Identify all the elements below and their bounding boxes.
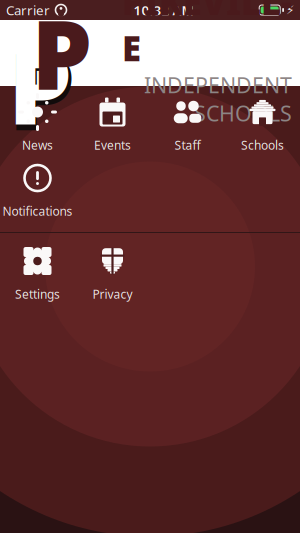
button[interactable]: Notifications [0, 158, 75, 222]
staticText: Carrier [6, 1, 50, 19]
button[interactable]: Privacy [75, 241, 150, 305]
staticText: News [22, 137, 53, 153]
staticText: Privacy [92, 286, 132, 302]
button[interactable]: Staff [150, 92, 225, 156]
staticText: Events [94, 137, 131, 153]
staticText: PIKEVILLE [122, 0, 292, 71]
staticText: P [8, 18, 116, 88]
staticText: Notifications [2, 203, 72, 219]
button[interactable]: Events [75, 92, 150, 156]
staticText: P [31, 0, 92, 117]
staticText: 10:32 AM [134, 1, 194, 19]
staticText: INDEPENDENT [144, 71, 292, 99]
staticText: Staff [174, 137, 200, 153]
button[interactable]: News [0, 92, 75, 156]
staticText: ⚡︎ [286, 3, 294, 17]
staticText: SCHOOLS [194, 99, 292, 127]
button[interactable]: Schools [225, 92, 300, 156]
button[interactable]: Settings [0, 241, 75, 305]
staticText: Settings [15, 286, 60, 302]
staticText: P [8, 18, 116, 88]
staticText: Schools [241, 137, 284, 153]
